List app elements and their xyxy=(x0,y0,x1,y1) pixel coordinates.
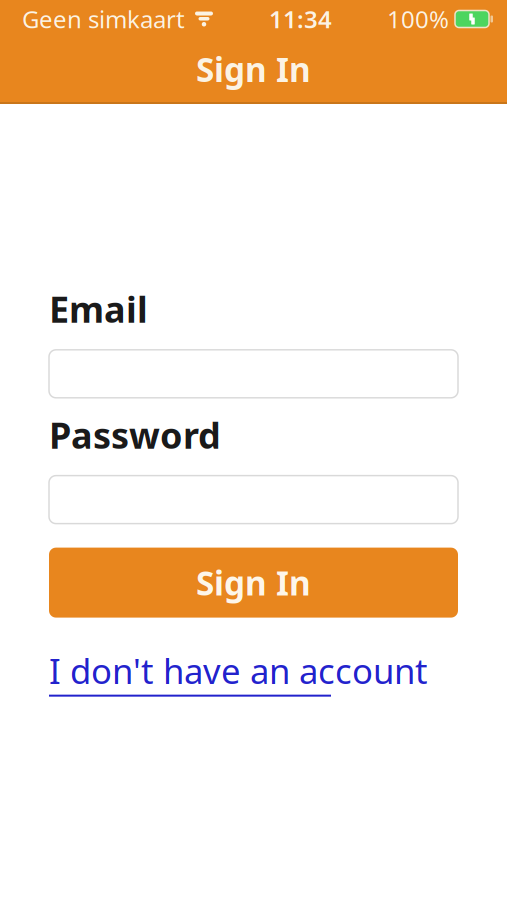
staticText: Password xyxy=(49,411,221,459)
staticText: Sign In xyxy=(196,560,311,605)
staticText: 11:34 xyxy=(269,3,332,35)
staticText: Geen simkaart xyxy=(22,3,185,35)
staticText: Email xyxy=(49,285,148,333)
staticText: I don't have an account xyxy=(49,648,428,694)
button[interactable]: I don't have an account xyxy=(49,648,428,697)
button[interactable]: Sign In xyxy=(49,548,458,618)
staticText: Sign In xyxy=(196,47,311,91)
staticText: 100% xyxy=(387,3,449,35)
